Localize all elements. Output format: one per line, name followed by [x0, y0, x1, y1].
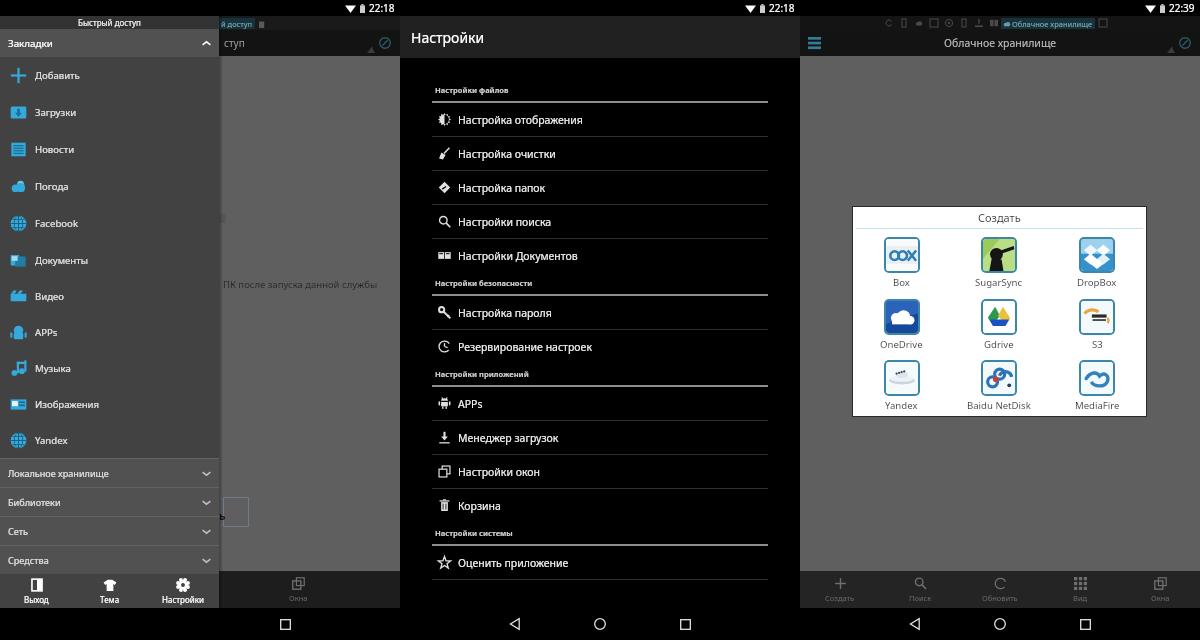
button[interactable]: Box: [853, 232, 950, 294]
button[interactable]: MediaFire: [1048, 355, 1146, 416]
button[interactable]: Документы: [0, 242, 219, 278]
staticText: Настройки безопасности: [435, 278, 533, 288]
staticText: Тема: [100, 594, 120, 605]
button[interactable]: Окна: [1120, 571, 1200, 608]
button[interactable]: Музыка: [0, 350, 219, 386]
staticText: SugarSync: [975, 276, 1023, 289]
staticText: Создать: [978, 210, 1021, 225]
button[interactable]: Закладки: [0, 29, 219, 57]
button[interactable]: Настройка папок: [432, 171, 768, 204]
staticText: Окна: [1151, 593, 1170, 603]
staticText: Yandex: [35, 434, 68, 447]
staticText: 22:39: [1169, 1, 1195, 15]
button[interactable]: Создать: [800, 571, 880, 608]
staticText: Новости: [35, 143, 75, 156]
button[interactable]: S3: [1048, 294, 1146, 355]
staticText: Настройка очистки: [458, 147, 556, 161]
staticText: Yandex: [885, 399, 918, 412]
button[interactable]: Home: [985, 609, 1015, 639]
staticText: ПК после запуска данной службы: [223, 278, 378, 291]
staticText: Облачное хранилище: [944, 36, 1057, 50]
staticText: DropBox: [1077, 276, 1117, 289]
staticText: Создать: [825, 593, 855, 603]
staticText: Резервирование настроек: [458, 340, 592, 354]
staticText: Настройки Документов: [458, 249, 578, 263]
button[interactable]: APPs: [432, 387, 768, 420]
button[interactable]: Корзина: [432, 489, 768, 522]
staticText: APPs: [458, 397, 483, 411]
staticText: Менеджер загрузок: [458, 431, 559, 445]
button[interactable]: Обновить: [960, 571, 1040, 608]
button[interactable]: Gdrive: [950, 294, 1048, 355]
staticText: Gdrive: [984, 338, 1014, 351]
button[interactable]: Оценить приложение: [432, 546, 768, 579]
button[interactable]: Погода: [0, 168, 219, 205]
staticText: MediaFire: [1075, 399, 1120, 412]
staticText: S3: [1092, 338, 1103, 351]
staticText: Добавить: [35, 69, 80, 82]
staticText: й доступ: [221, 19, 253, 29]
button[interactable]: Видео: [0, 278, 219, 314]
button[interactable]: Настройки Документов: [432, 239, 768, 272]
button[interactable]: SugarSync: [950, 232, 1048, 294]
button[interactable]: Back: [900, 609, 930, 639]
staticText: Настройки: [162, 594, 204, 605]
button[interactable]: Menu: [802, 31, 826, 55]
button[interactable]: Локальное хранилище: [0, 459, 219, 487]
staticText: Настройки файлов: [435, 85, 509, 95]
staticText: Вид: [1073, 593, 1088, 603]
staticText: Настройки системы: [435, 528, 513, 538]
button[interactable]: Home: [585, 609, 615, 639]
button[interactable]: Facebook: [0, 205, 219, 242]
button[interactable]: Настройка очистки: [432, 137, 768, 170]
button[interactable]: Выход: [0, 574, 73, 608]
staticText: Облачное хранилище: [1012, 19, 1093, 29]
button[interactable]: Средства: [0, 546, 219, 574]
button[interactable]: APPs: [0, 314, 219, 350]
button[interactable]: Настройка пароля: [432, 296, 768, 329]
staticText: Настройки: [411, 28, 485, 47]
button[interactable]: Поиск: [880, 571, 960, 608]
button[interactable]: Добавить: [0, 57, 219, 94]
staticText: Выход: [24, 594, 49, 605]
button[interactable]: Back: [500, 609, 530, 639]
button[interactable]: Новости: [0, 131, 219, 168]
button[interactable]: Настройка отображения: [432, 103, 768, 136]
staticText: 22:18: [769, 1, 795, 15]
button[interactable]: DropBox: [1048, 232, 1146, 294]
staticText: Средства: [8, 554, 49, 566]
button[interactable]: Резервирование настроек: [432, 330, 768, 363]
staticText: Музыка: [35, 362, 71, 375]
button[interactable]: Recents: [1070, 609, 1100, 639]
staticText: Закладки: [8, 37, 53, 50]
staticText: Настройки приложений: [435, 369, 529, 379]
button[interactable]: OneDrive: [853, 294, 950, 355]
button[interactable]: Тема: [73, 574, 146, 608]
staticText: Видео: [35, 290, 65, 303]
staticText: Окна: [289, 593, 308, 603]
button[interactable]: Изображения: [0, 386, 219, 422]
button[interactable]: Загрузки: [0, 94, 219, 131]
button[interactable]: Настройки поиска: [432, 205, 768, 238]
button[interactable]: Библиотеки: [0, 488, 219, 516]
button[interactable]: Вид: [1040, 571, 1120, 608]
button[interactable]: Yandex: [0, 422, 219, 458]
button[interactable]: Менеджер загрузок: [432, 421, 768, 454]
staticText: Оценить приложение: [458, 556, 569, 570]
button[interactable]: Recents: [670, 609, 700, 639]
staticText: Загрузки: [35, 106, 77, 119]
staticText: Facebook: [35, 217, 79, 230]
staticText: OneDrive: [880, 338, 923, 351]
staticText: 22:18: [369, 1, 395, 15]
staticText: Box: [893, 276, 910, 289]
button[interactable]: Настройки окон: [432, 455, 768, 488]
button[interactable]: Настройки: [146, 574, 219, 608]
button[interactable]: Сеть: [0, 517, 219, 545]
staticText: Baidu NetDisk: [967, 399, 1031, 412]
button[interactable]: Yandex: [853, 355, 950, 416]
button[interactable]: Baidu NetDisk: [950, 355, 1048, 416]
staticText: Настройки поиска: [458, 215, 552, 229]
button[interactable]: Recents: [270, 609, 300, 639]
